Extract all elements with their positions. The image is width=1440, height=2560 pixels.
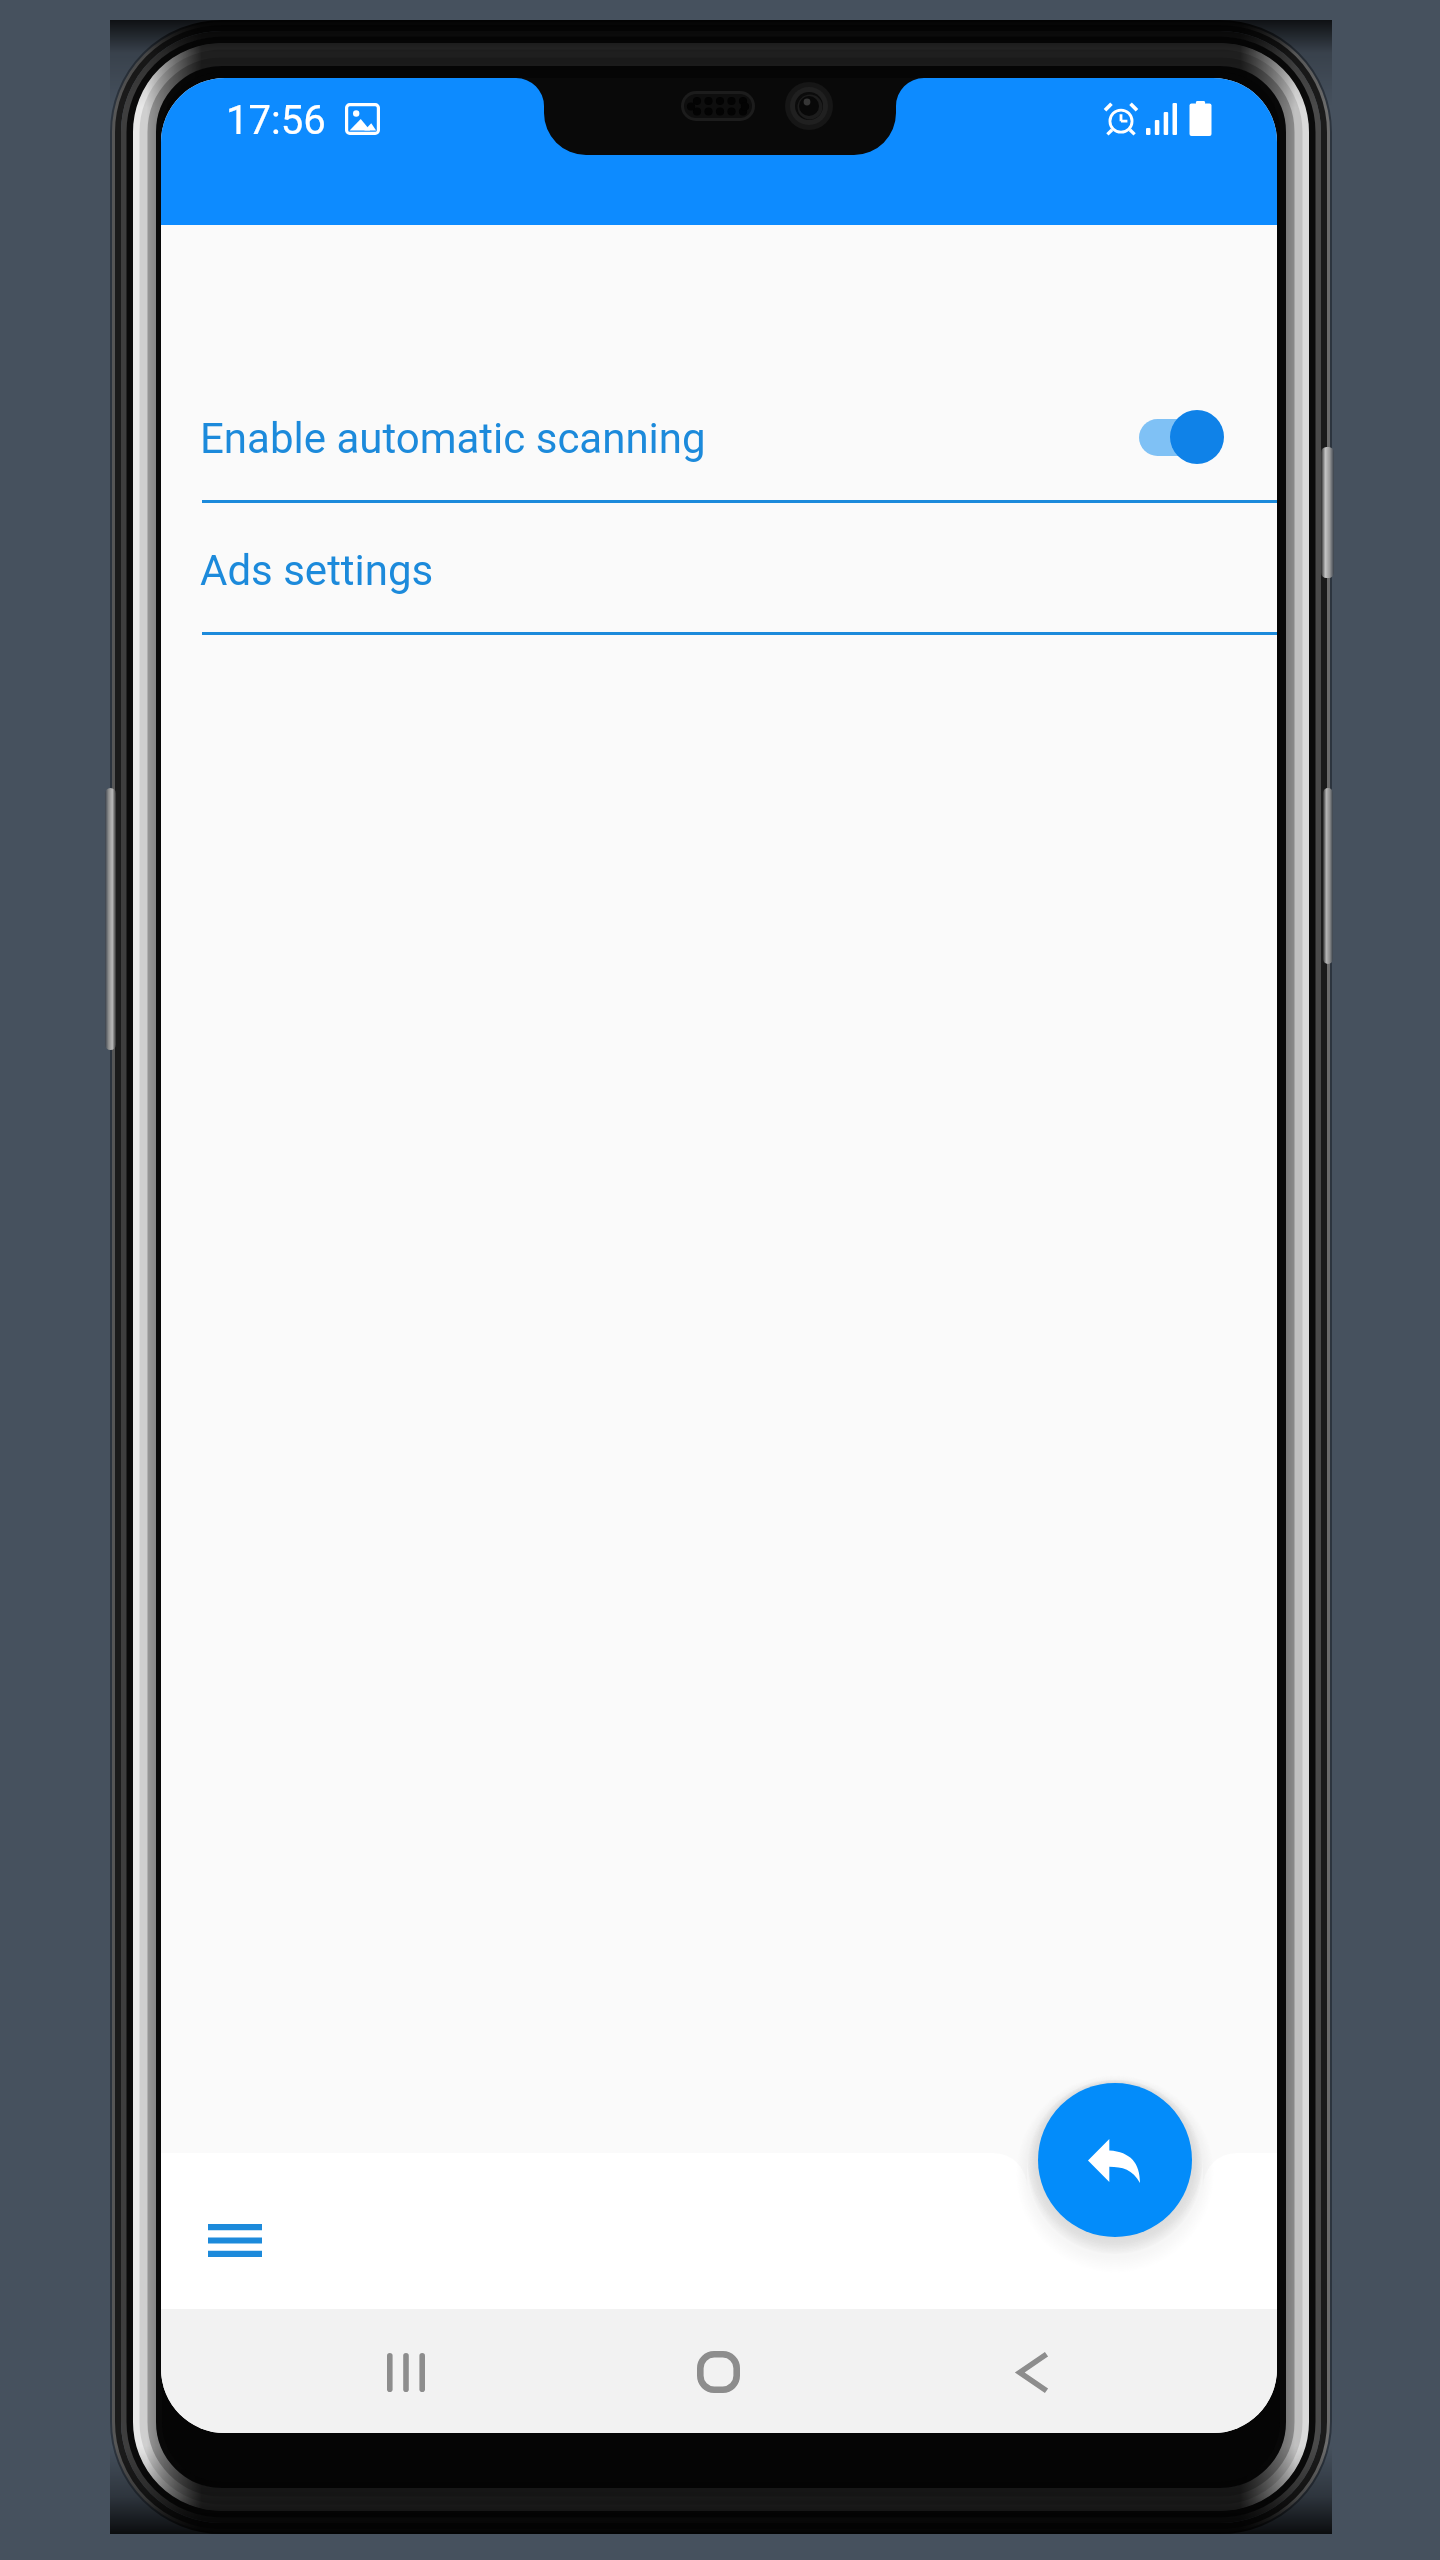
button[interactable]: Ads settings: [161, 503, 1277, 635]
button[interactable]: Reply: [1038, 2083, 1192, 2237]
button[interactable]: Recents: [351, 2317, 461, 2427]
button[interactable]: Enable automatic scanning: [161, 371, 1277, 503]
button[interactable]: Menu: [180, 2185, 290, 2295]
staticText: 17:56: [226, 97, 326, 144]
staticText: Enable automatic scanning: [200, 414, 706, 463]
button[interactable]: Home: [663, 2317, 773, 2427]
button[interactable]: Back: [977, 2317, 1087, 2427]
staticText: Ads settings: [200, 546, 434, 595]
